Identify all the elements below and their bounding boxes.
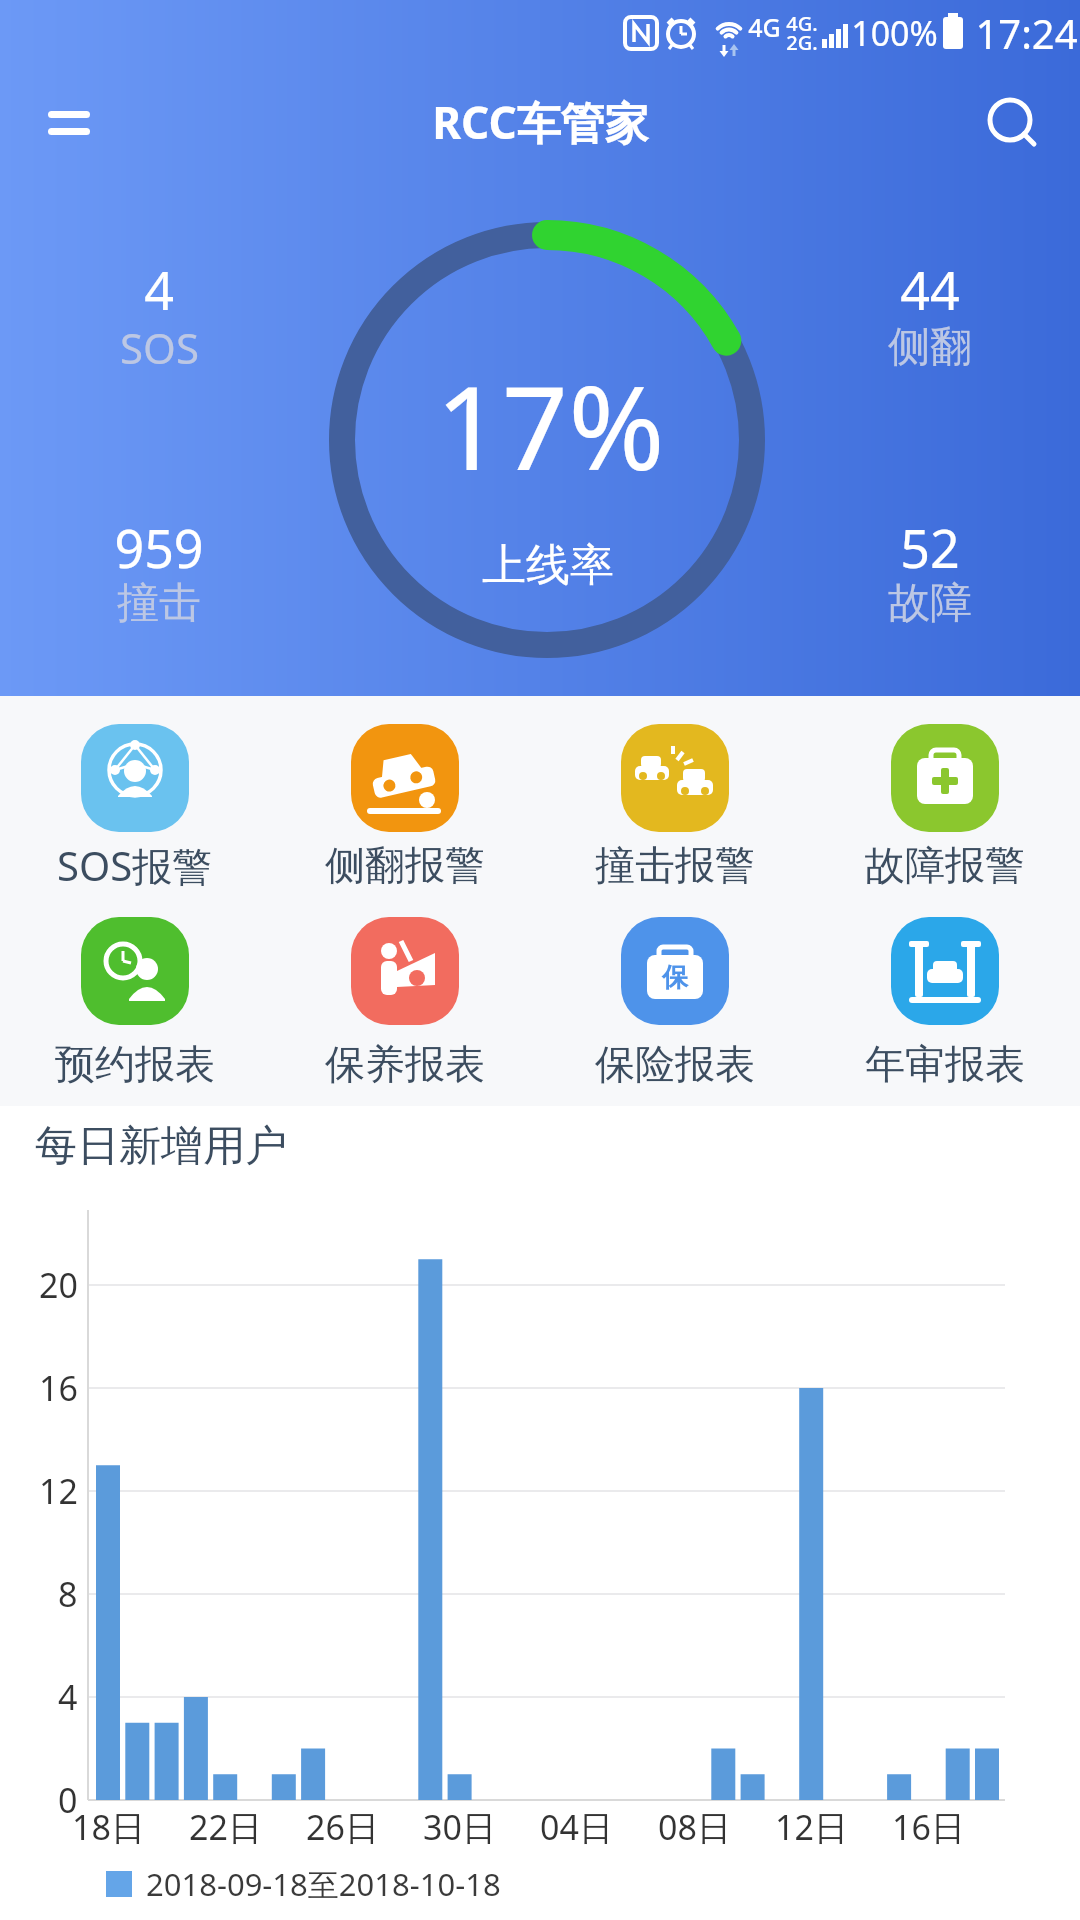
staticText: 18日 (72, 1804, 145, 1850)
button[interactable] (48, 98, 108, 158)
staticText: 2018-09-18至2018-10-18 (146, 1863, 501, 1905)
staticText: 100% (851, 10, 938, 56)
staticText: 04日 (540, 1804, 613, 1850)
staticText: 侧翻 (888, 321, 972, 374)
staticText: 30日 (423, 1804, 496, 1850)
staticText: SOS报警 (57, 838, 213, 893)
staticText: RCC车管家 (432, 92, 649, 152)
staticText: 保 (662, 961, 688, 994)
staticText: 22日 (189, 1804, 262, 1850)
staticText: 12日 (775, 1804, 848, 1850)
staticText: 保养报表 (325, 1039, 485, 1089)
staticText: 12 (39, 1468, 78, 1514)
staticText: 4 (58, 1674, 78, 1720)
button[interactable]: 预约报表 (53, 917, 217, 1107)
staticText: 年审报表 (865, 1039, 1025, 1089)
button[interactable]: 侧翻报警 (323, 724, 487, 914)
staticText: 上线率 (482, 538, 614, 593)
staticText: SOS (120, 319, 199, 376)
staticText: 4 (144, 254, 174, 325)
staticText: 52 (900, 512, 960, 583)
staticText: 预约报表 (55, 1039, 215, 1089)
staticText: 保险报表 (595, 1039, 755, 1089)
staticText: 17:24 (975, 6, 1078, 60)
staticText: 2G. (786, 29, 818, 56)
staticText: 44 (900, 254, 960, 325)
staticText: 撞击 (117, 577, 201, 630)
button[interactable]: 保养报表 (323, 917, 487, 1107)
staticText: 8 (58, 1571, 78, 1617)
staticText: 08日 (658, 1804, 731, 1850)
button[interactable]: 撞击报警 (593, 724, 757, 914)
staticText: 撞击报警 (595, 840, 755, 890)
staticText: 侧翻报警 (325, 840, 485, 890)
staticText: 4G. (786, 10, 818, 37)
staticText: 每日新增用户 (35, 1120, 287, 1173)
button[interactable] (980, 90, 1044, 154)
staticText: 17% (435, 346, 665, 504)
button[interactable]: 年审报表 (863, 917, 1027, 1107)
button[interactable]: 故障报警 (863, 724, 1027, 914)
staticText: 0 (58, 1777, 78, 1823)
staticText: 959 (114, 512, 204, 583)
staticText: 16 (39, 1365, 78, 1411)
staticText: 26日 (306, 1804, 379, 1850)
staticText: 故障报警 (865, 840, 1025, 890)
staticText: 20 (39, 1262, 78, 1308)
button[interactable]: 保 (593, 917, 757, 1107)
staticText: 故障 (888, 577, 972, 630)
staticText: 4G (748, 10, 781, 44)
button[interactable]: SOS报警 (53, 724, 217, 914)
staticText: 16日 (892, 1804, 965, 1850)
